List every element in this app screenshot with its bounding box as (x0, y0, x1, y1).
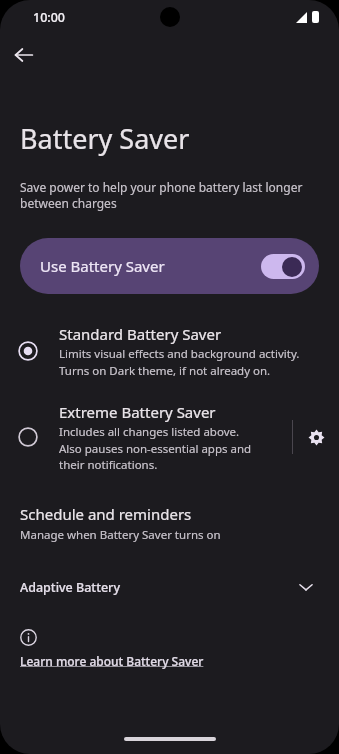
button[interactable]: Back (8, 39, 40, 71)
button[interactable]: Extreme Battery Saver (0, 400, 292, 474)
staticText: Limits visual effects and background act… (59, 346, 300, 378)
staticText: Battery Saver (20, 120, 190, 157)
button[interactable]: Learn more about Battery Saver (0, 629, 339, 669)
staticText: Save power to help your phone battery la… (20, 179, 303, 212)
button[interactable]: Use Battery Saver toggle (261, 254, 305, 279)
staticText: Schedule and reminders (20, 504, 192, 524)
staticText: Adaptive Battery (20, 579, 293, 596)
staticText: Standard Battery Saver (59, 324, 222, 344)
button[interactable]: Use Battery Saver (20, 238, 319, 294)
button[interactable]: Standard Battery Saver (0, 322, 339, 380)
button[interactable]: Extreme Battery Saver settings (293, 414, 339, 460)
other: Expand Adaptive Battery (293, 574, 319, 600)
staticText: 10:00 (33, 9, 66, 26)
staticText: Learn more about Battery Saver (20, 653, 204, 669)
staticText: Manage when Battery Saver turns on (20, 527, 221, 543)
button[interactable]: Adaptive Battery (0, 567, 339, 607)
button[interactable]: Schedule and reminders (0, 502, 339, 545)
staticText: Includes all changes listed above. Also … (59, 424, 252, 472)
staticText: Extreme Battery Saver (59, 402, 216, 422)
staticText: Use Battery Saver (40, 256, 261, 276)
